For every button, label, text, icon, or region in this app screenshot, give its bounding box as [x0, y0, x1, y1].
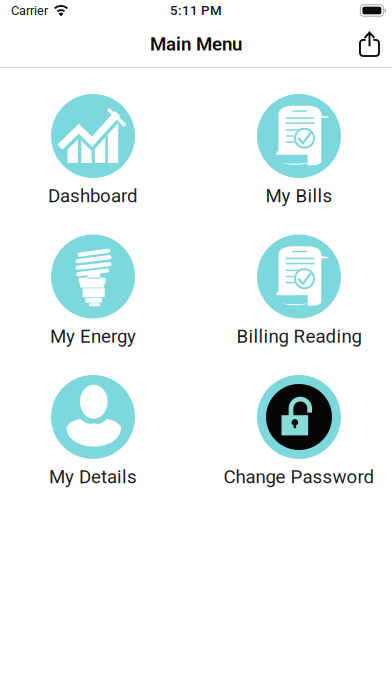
- staticText: My Energy: [50, 325, 136, 347]
- staticText: My Details: [49, 466, 137, 488]
- button[interactable]: Share: [347, 21, 392, 67]
- button[interactable]: Change Password: [211, 375, 387, 492]
- staticText: Carrier: [11, 3, 48, 18]
- staticText: My Bills: [265, 185, 332, 207]
- button[interactable]: My Bills: [211, 94, 387, 211]
- button[interactable]: Dashboard: [5, 94, 181, 211]
- staticText: Billing Reading: [236, 325, 361, 347]
- button[interactable]: My Energy: [5, 234, 181, 351]
- staticText: Dashboard: [48, 185, 138, 207]
- button[interactable]: Billing Reading: [211, 234, 387, 351]
- staticText: Main Menu: [150, 33, 242, 55]
- button[interactable]: My Details: [5, 375, 181, 492]
- staticText: Change Password: [223, 466, 374, 488]
- staticText: 5:11 PM: [170, 3, 222, 18]
